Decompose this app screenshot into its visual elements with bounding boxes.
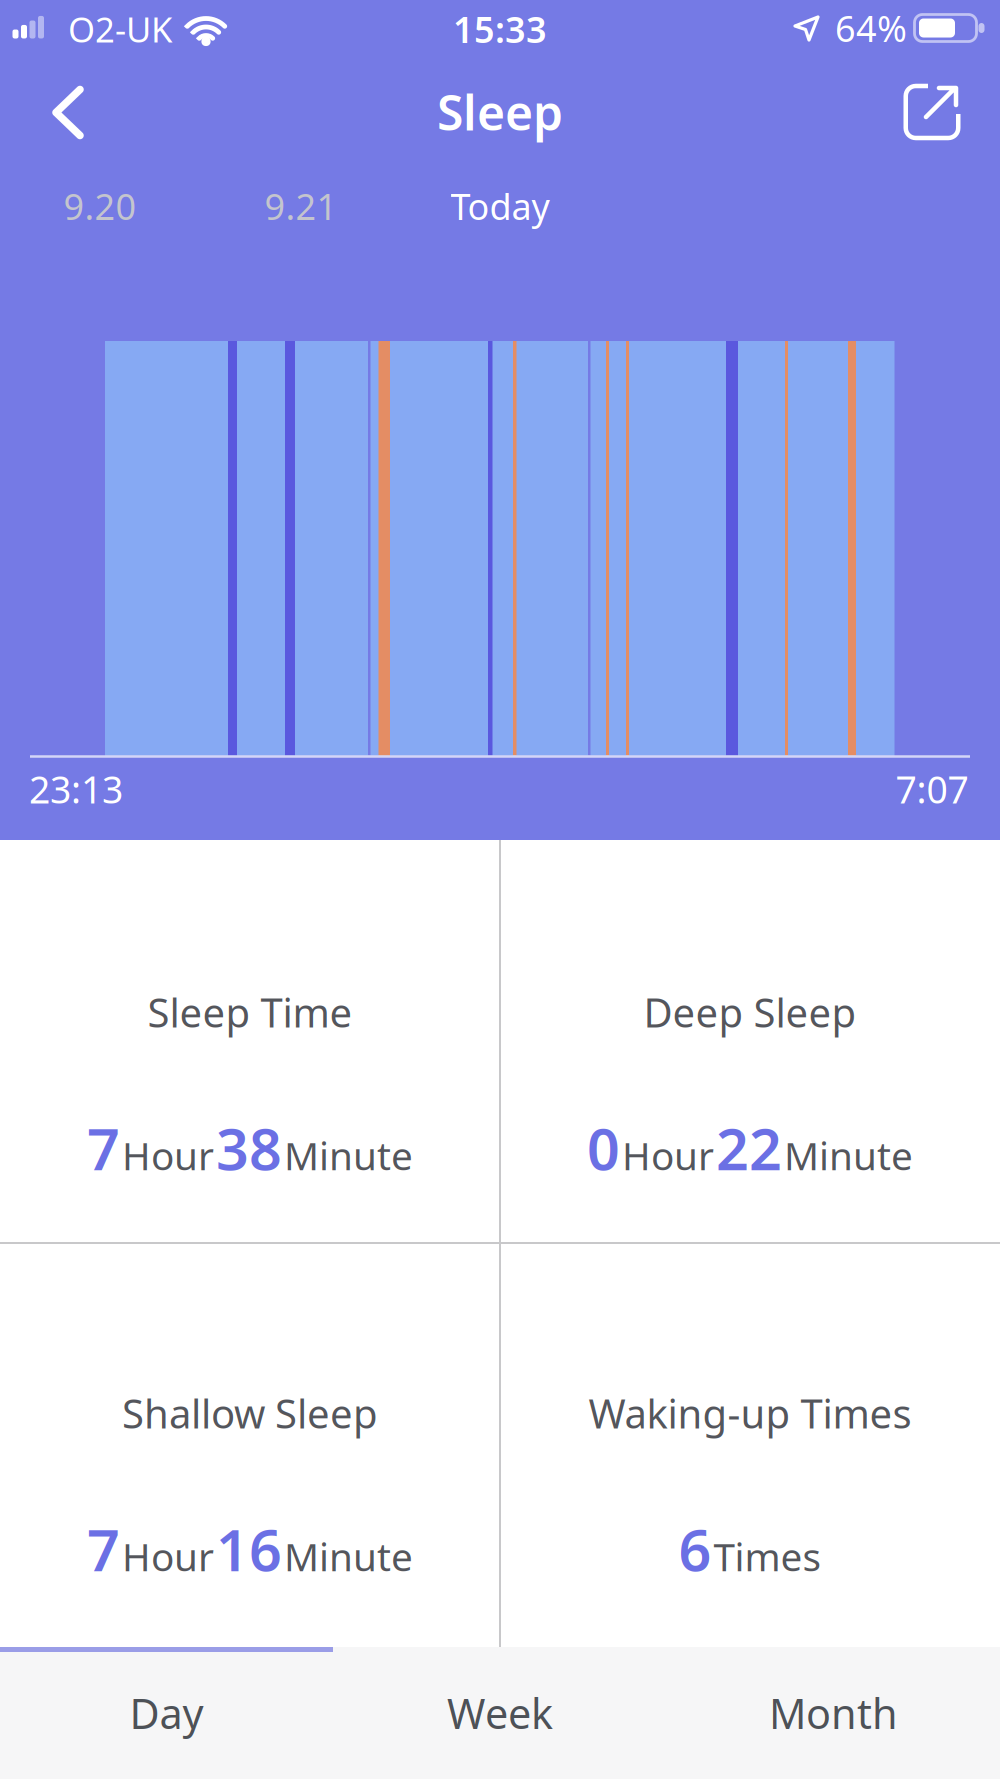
staticText: 9.21 bbox=[264, 182, 337, 230]
button[interactable]: Week bbox=[333, 1647, 666, 1779]
button[interactable] bbox=[47, 84, 91, 140]
staticText: O2-UK bbox=[68, 6, 172, 52]
staticText: 6 bbox=[678, 1511, 711, 1587]
staticText: Minute bbox=[284, 1531, 413, 1582]
staticText: Sleep bbox=[437, 80, 563, 144]
staticText: Waking-up Times bbox=[588, 1386, 911, 1439]
staticText: 9.20 bbox=[63, 182, 136, 230]
staticText: Today bbox=[450, 182, 549, 230]
staticText: 7 bbox=[87, 1110, 120, 1186]
staticText: Minute bbox=[784, 1130, 913, 1181]
staticText: 0 bbox=[587, 1110, 620, 1186]
staticText: Hour bbox=[122, 1531, 214, 1582]
staticText: Hour bbox=[122, 1130, 214, 1181]
button[interactable] bbox=[900, 80, 964, 144]
button[interactable]: Day bbox=[0, 1647, 333, 1779]
staticText: Shallow Sleep bbox=[122, 1386, 378, 1439]
staticText: Minute bbox=[284, 1130, 413, 1181]
button[interactable]: Today bbox=[410, 166, 590, 246]
staticText: Times bbox=[713, 1531, 821, 1582]
staticText: Deep Sleep bbox=[643, 985, 856, 1038]
staticText: Month bbox=[769, 1686, 898, 1740]
staticText: Hour bbox=[622, 1130, 714, 1181]
staticText: 7 bbox=[87, 1511, 120, 1587]
staticText: 16 bbox=[216, 1511, 282, 1587]
staticText: 15:33 bbox=[453, 5, 547, 53]
button[interactable]: 9.20 bbox=[10, 166, 190, 246]
button[interactable]: Month bbox=[667, 1647, 1000, 1779]
staticText: 38 bbox=[216, 1110, 282, 1186]
staticText: Day bbox=[129, 1686, 203, 1740]
staticText: 7:07 bbox=[895, 764, 968, 814]
staticText: Sleep Time bbox=[147, 985, 352, 1038]
button[interactable]: 9.21 bbox=[211, 166, 391, 246]
staticText: Week bbox=[447, 1686, 553, 1740]
staticText: 23:13 bbox=[29, 764, 123, 814]
staticText: 22 bbox=[716, 1110, 782, 1186]
staticText: 64% bbox=[835, 4, 907, 52]
